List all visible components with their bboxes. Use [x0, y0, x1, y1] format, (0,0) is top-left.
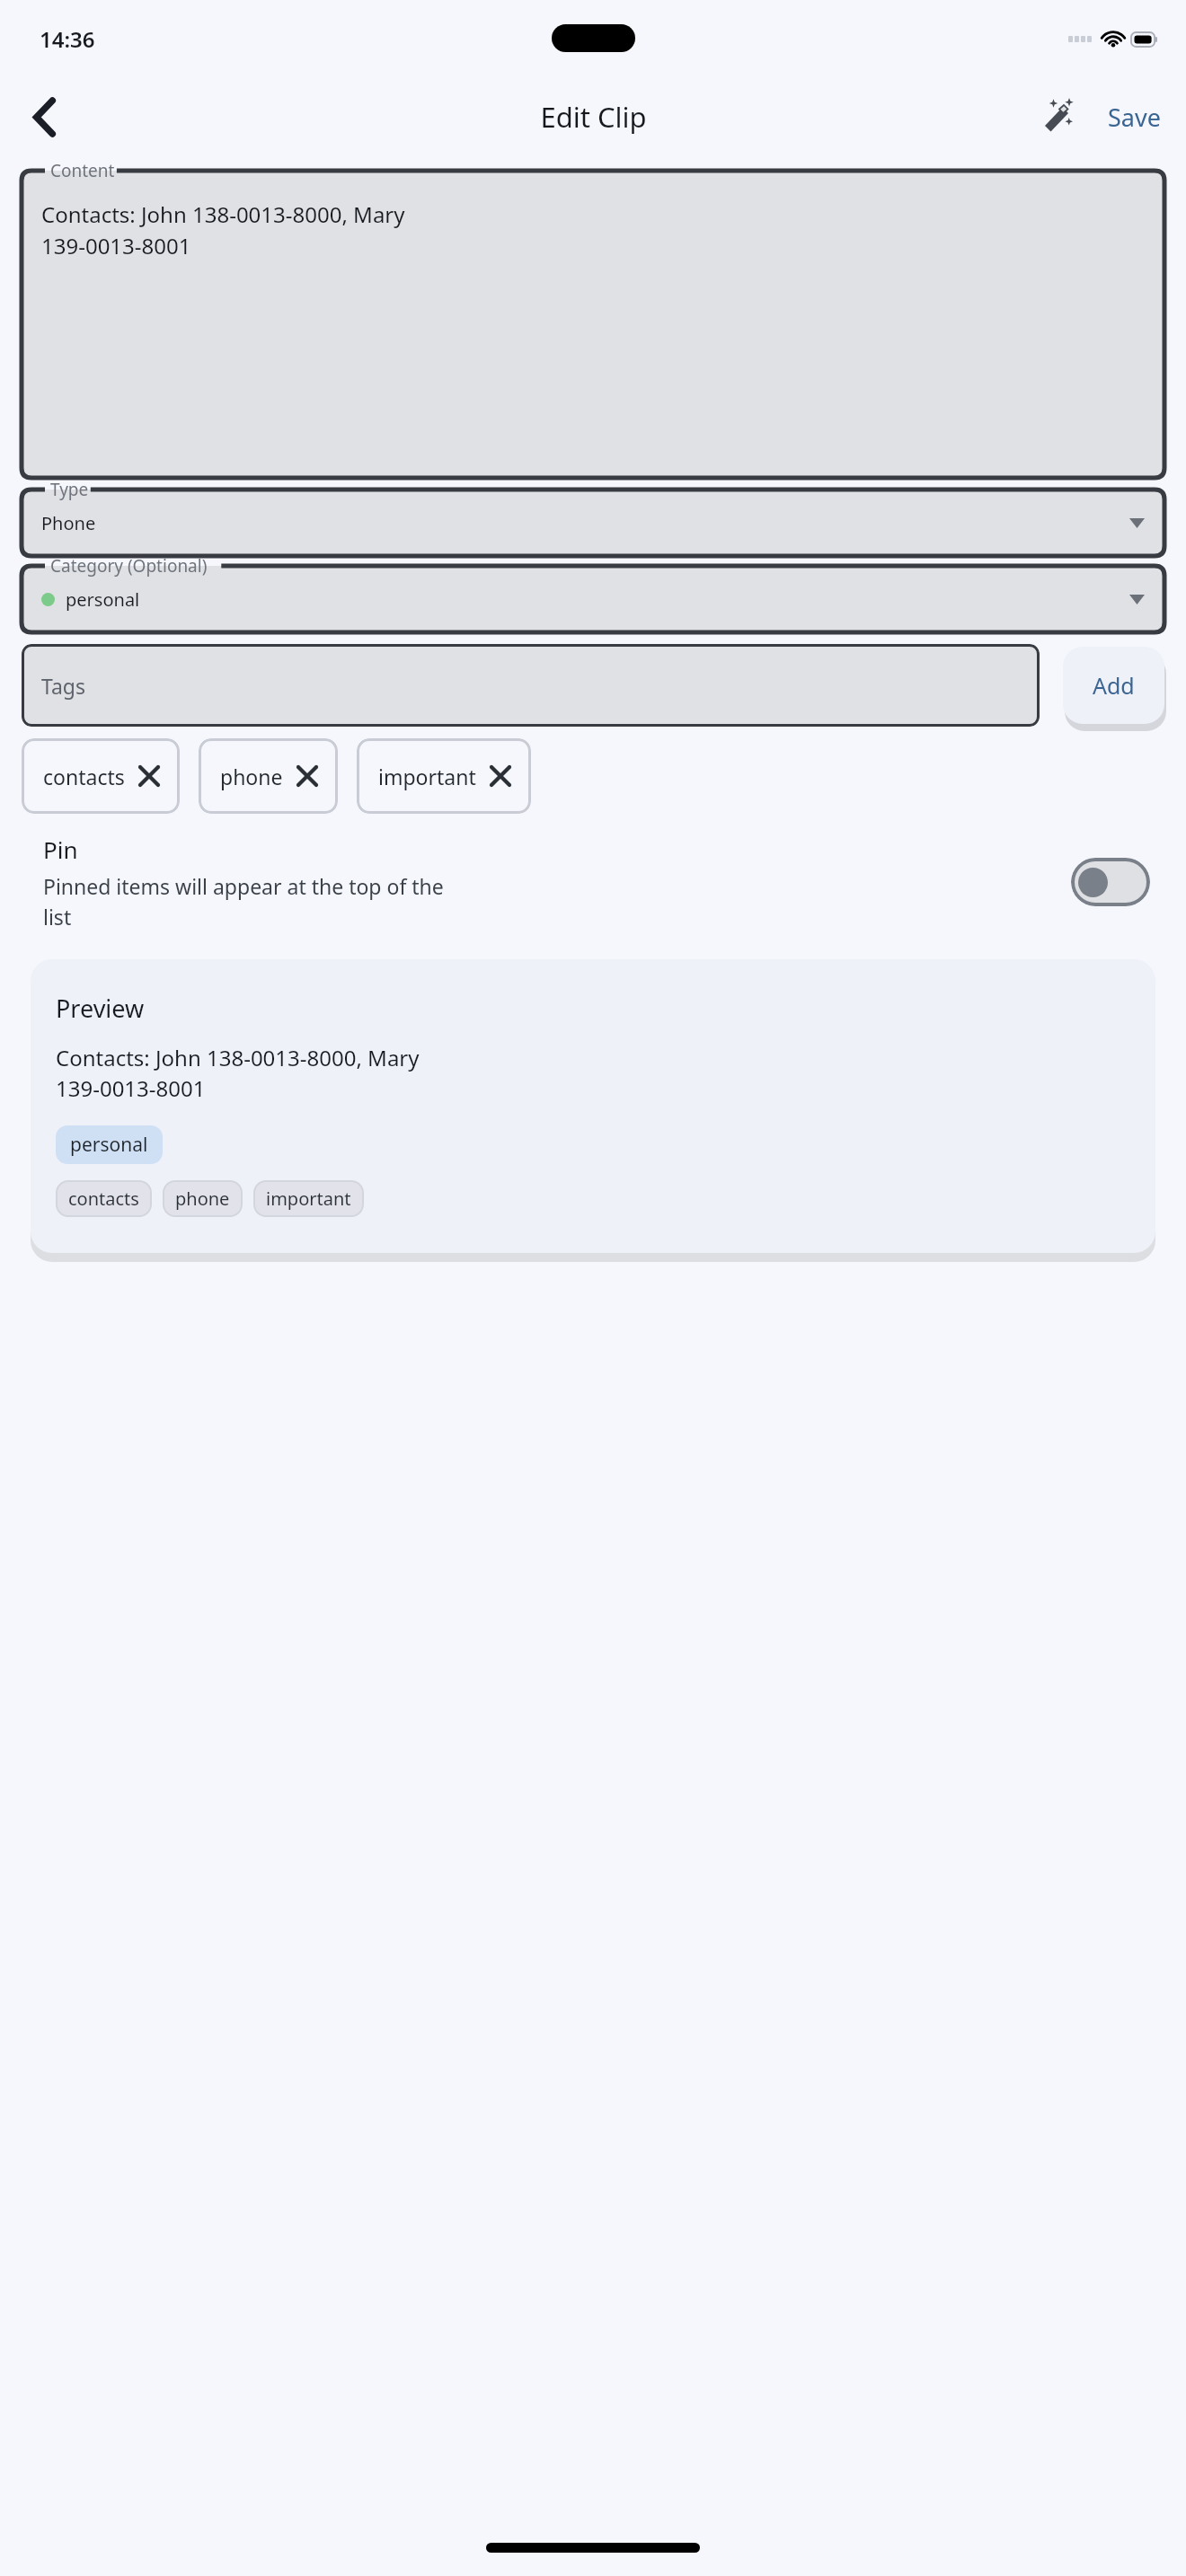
button[interactable]: Back [18, 91, 70, 143]
staticText: Tags [41, 672, 86, 700]
staticText: 14:36 [40, 24, 95, 54]
staticText: Pin [43, 834, 78, 865]
staticText: important [378, 763, 476, 790]
button[interactable]: contacts [22, 738, 180, 814]
staticText: Add [1093, 670, 1135, 701]
button[interactable]: important [357, 738, 531, 814]
staticText: phone [220, 763, 283, 790]
staticText: Pinned items will appear at the top of t… [43, 872, 444, 931]
staticText: Content [50, 159, 115, 182]
staticText: contacts [43, 763, 125, 790]
staticText: Save [1108, 101, 1161, 134]
staticText: Contacts: John 138-0013-8000, Mary 139-0… [56, 1043, 420, 1104]
staticText: important [266, 1187, 351, 1211]
staticText: Edit Clip [540, 98, 647, 136]
button[interactable]: Auto format [1034, 87, 1093, 146]
staticText: contacts [68, 1187, 139, 1211]
staticText: Phone [41, 511, 96, 535]
button[interactable]: Add [1063, 647, 1164, 724]
button[interactable]: Category (Optional) [22, 566, 1164, 632]
staticText: personal [66, 587, 140, 612]
button[interactable]: Type [22, 490, 1164, 556]
button[interactable]: Pin toggle [1071, 858, 1150, 906]
staticText: phone [175, 1187, 230, 1211]
staticText: Preview [56, 992, 145, 1025]
button[interactable]: Tags [22, 644, 1040, 727]
staticText: Contacts: John 138-0013-8000, Mary 139-0… [41, 199, 405, 260]
button[interactable]: Save [1101, 93, 1168, 141]
button[interactable]: phone [199, 738, 338, 814]
staticText: Category (Optional) [50, 554, 208, 578]
staticText: personal [70, 1132, 148, 1158]
staticText: Type [50, 478, 89, 501]
